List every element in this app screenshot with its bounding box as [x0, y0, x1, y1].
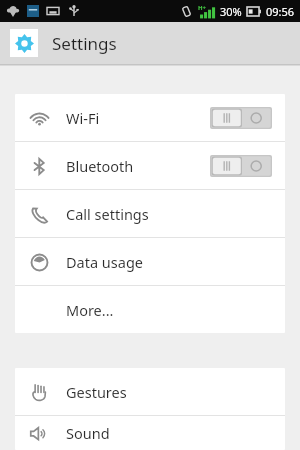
button[interactable]: Call settings	[15, 190, 285, 237]
staticText: Bluetooth	[66, 156, 134, 176]
button[interactable]: Settings	[0, 22, 300, 64]
staticText: Gestures	[66, 382, 127, 402]
staticText: Data usage	[66, 252, 143, 272]
staticText: Settings	[52, 32, 117, 55]
button[interactable]: Toggle Wi-Fi	[210, 107, 272, 129]
button[interactable]: Sound	[15, 416, 285, 450]
button[interactable]: Bluetooth	[15, 142, 285, 189]
staticText: More...	[66, 300, 114, 320]
staticText: Sound	[66, 423, 110, 443]
button[interactable]: Gestures	[15, 368, 285, 415]
staticText: 30%	[220, 4, 242, 19]
staticText: Call settings	[66, 204, 149, 224]
staticText: H+	[198, 4, 207, 12]
button[interactable]: More...	[15, 286, 285, 333]
staticText: 09:56	[266, 4, 295, 19]
button[interactable]: Wi-Fi	[15, 94, 285, 141]
button[interactable]: Data usage	[15, 238, 285, 285]
staticText: Wi-Fi	[66, 108, 100, 128]
button[interactable]: Toggle Bluetooth	[210, 155, 272, 177]
